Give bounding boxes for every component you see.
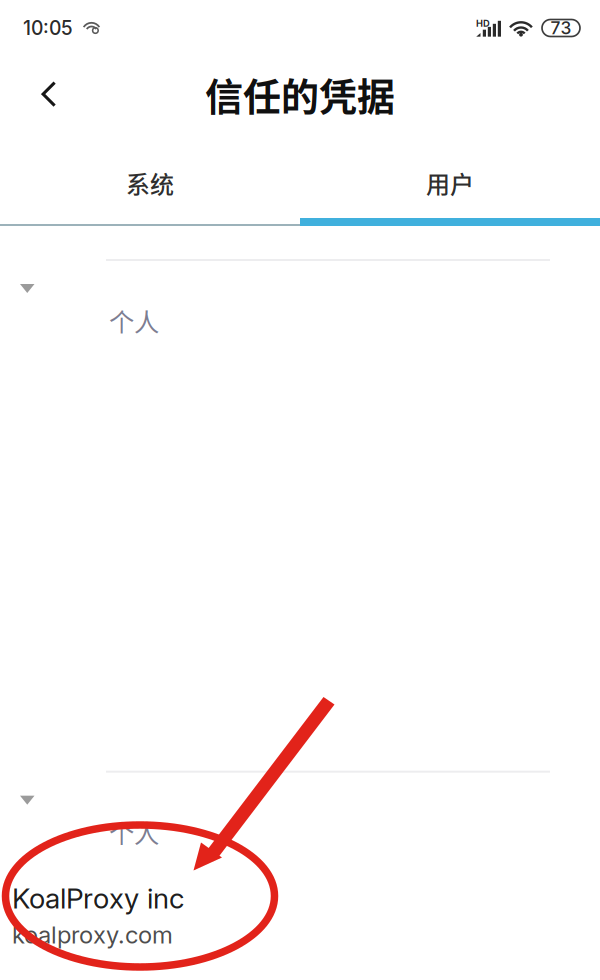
staticText: 个人 bbox=[109, 302, 159, 339]
button[interactable]: 个人 bbox=[0, 261, 600, 339]
staticText: 个人 bbox=[109, 814, 159, 850]
button[interactable]: 个人 bbox=[0, 773, 600, 850]
staticText: 信任的凭据 bbox=[205, 66, 395, 121]
button[interactable]: 系统 bbox=[0, 140, 300, 226]
staticText: 73 bbox=[550, 17, 571, 38]
staticText: KoalProxy inc bbox=[12, 881, 184, 915]
button[interactable]: KoalProxy inc bbox=[0, 850, 600, 949]
staticText: 10:05 bbox=[23, 16, 73, 40]
button[interactable]: Back bbox=[18, 63, 80, 125]
button[interactable]: 用户 bbox=[300, 140, 600, 226]
staticText: 系统 bbox=[126, 166, 174, 200]
staticText: koalproxy.com bbox=[12, 920, 173, 949]
staticText: 用户 bbox=[426, 166, 474, 200]
staticText: HD bbox=[476, 18, 490, 29]
